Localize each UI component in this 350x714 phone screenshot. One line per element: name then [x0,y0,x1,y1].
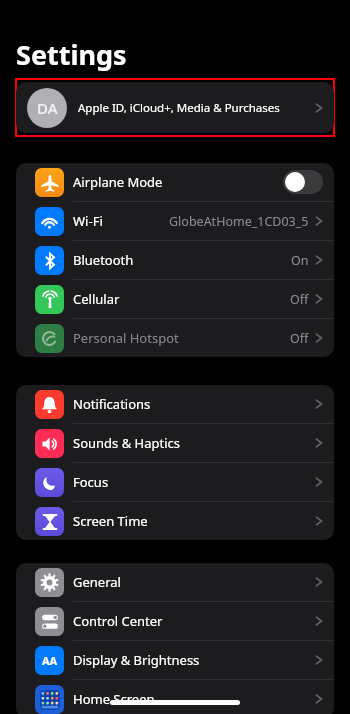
button[interactable]: Control Center [16,602,334,640]
staticText: On [291,252,309,269]
staticText: Airplane Mode [73,173,163,191]
button[interactable]: Sounds & Haptics [16,424,334,462]
button[interactable]: DA [16,82,334,133]
staticText: Home Screen [73,690,155,708]
staticText: Off [290,330,309,347]
staticText: Screen Time [73,512,148,530]
staticText: Notifications [73,395,151,413]
button[interactable]: Bluetooth [16,241,334,279]
staticText: Settings [16,36,127,73]
staticText: Display & Brightness [73,651,200,669]
button[interactable]: Cellular [16,280,334,318]
button[interactable]: Home Screen [16,680,334,714]
staticText: General [73,573,121,591]
button[interactable]: Personal Hotspot [16,319,334,357]
button[interactable]: Notifications [16,385,334,423]
staticText: Cellular [73,290,120,308]
staticText: Bluetooth [73,251,134,269]
button[interactable]: AA [16,641,334,679]
staticText: Focus [73,473,109,491]
button[interactable]: Wi-Fi [16,202,334,240]
staticText: Off [290,291,309,308]
button[interactable]: Screen Time [16,502,334,540]
button[interactable]: Airplane Mode [16,163,334,201]
staticText: Apple ID, iCloud+, Media & Purchases [78,100,280,116]
button[interactable]: Focus [16,463,334,501]
staticText: AA [42,653,58,668]
staticText: Personal Hotspot [73,329,179,347]
button[interactable]: Airplane Mode toggle [283,170,323,194]
staticText: Sounds & Haptics [73,434,181,452]
staticText: DA [37,98,58,118]
staticText: Control Center [73,612,163,630]
staticText: GlobeAtHome_1CD03_5 [169,213,309,230]
button[interactable]: General [16,563,334,601]
staticText: Wi-Fi [73,212,103,230]
